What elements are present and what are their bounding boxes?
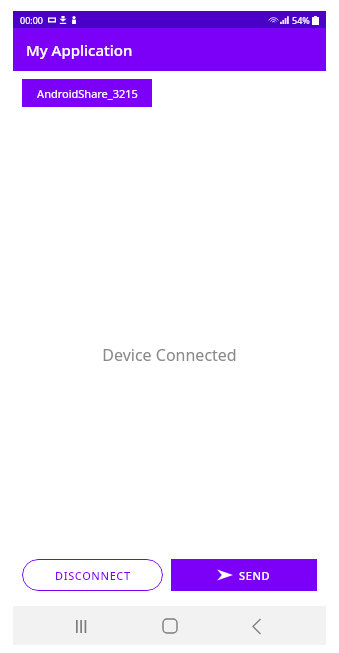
button[interactable]: DISCONNECT (22, 559, 163, 591)
button[interactable]: Home (151, 607, 189, 645)
staticText: Device Connected (102, 344, 237, 366)
staticText: 00:00 (20, 14, 44, 26)
button[interactable]: Back (238, 607, 276, 645)
staticText: AndroidShare_3215 (37, 86, 138, 101)
staticText: 54% (292, 14, 310, 26)
staticText: DISCONNECT (55, 568, 131, 583)
button[interactable]: AndroidShare_3215 (22, 79, 152, 107)
staticText: My Application (26, 40, 133, 60)
button[interactable]: Recent apps (63, 607, 101, 645)
button[interactable]: SEND (171, 559, 317, 591)
staticText: SEND (239, 568, 271, 583)
